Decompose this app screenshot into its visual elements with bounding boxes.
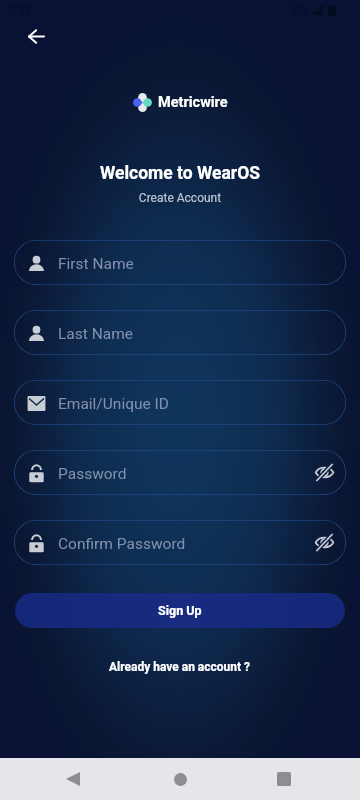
button[interactable]: First Name — [14, 240, 346, 285]
button[interactable]: Last Name — [14, 310, 346, 355]
button[interactable]: Back — [15, 15, 57, 57]
button[interactable]: Already have an account ? — [101, 657, 259, 677]
button[interactable]: Email/Unique ID — [14, 380, 346, 425]
staticText: Last Name — [58, 325, 133, 343]
staticText: Sign Up — [158, 603, 202, 618]
button[interactable]: Back — [58, 764, 88, 794]
button[interactable]: Recent apps — [269, 764, 299, 794]
button[interactable]: Confirm Password — [14, 520, 346, 565]
staticText: First Name — [58, 255, 134, 273]
staticText: Email/Unique ID — [58, 395, 169, 413]
staticText: 3G — [292, 3, 307, 17]
staticText: Confirm Password — [58, 535, 186, 553]
staticText: Already have an account ? — [109, 660, 251, 674]
staticText: Welcome to WearOS — [0, 163, 360, 184]
staticText: 5:35 — [7, 3, 32, 18]
button[interactable]: Sign Up — [15, 593, 345, 628]
staticText: Password — [58, 465, 127, 483]
staticText: Metricwire — [158, 94, 228, 111]
button[interactable]: Password — [14, 450, 346, 495]
staticText: Create Account — [0, 191, 360, 205]
button[interactable]: Home — [165, 764, 195, 794]
